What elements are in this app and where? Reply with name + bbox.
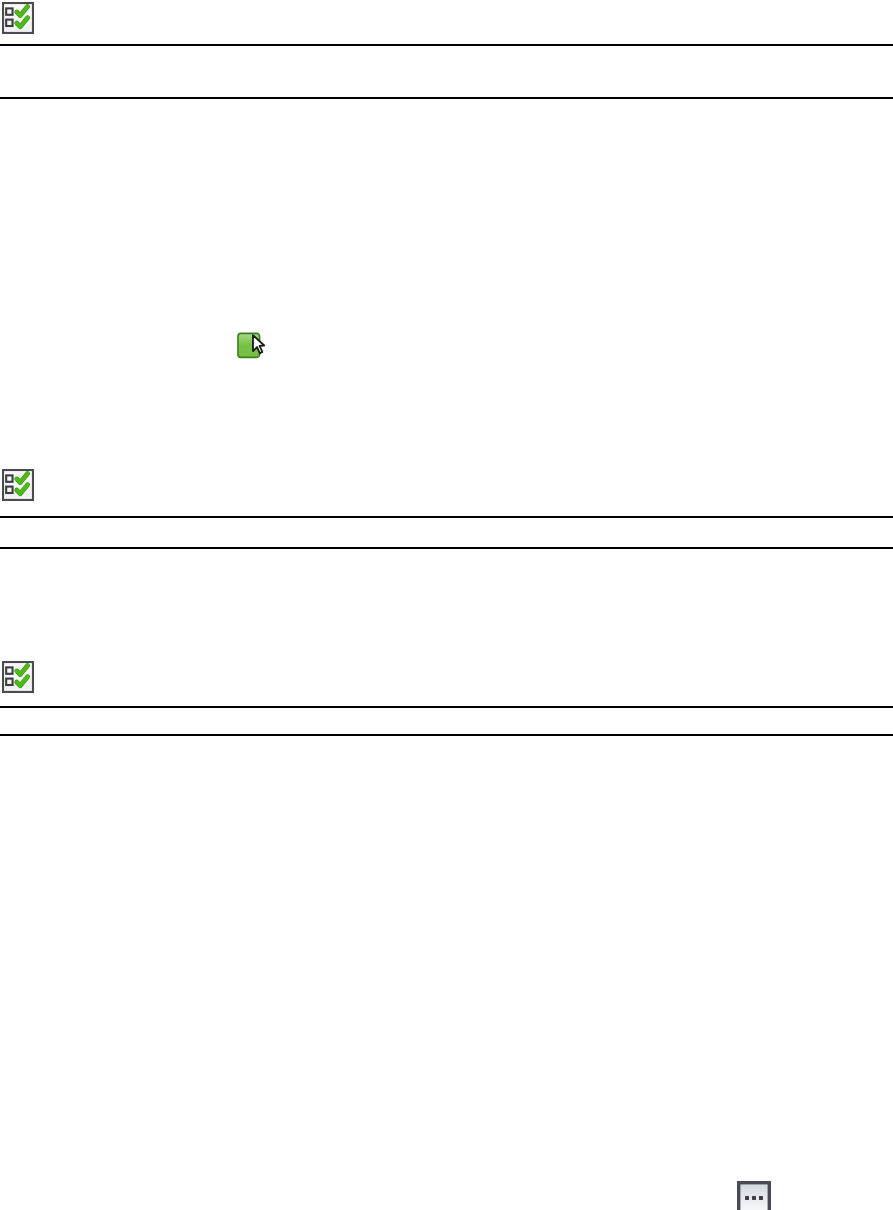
button[interactable]: More options [737, 1181, 771, 1210]
button[interactable]: Checklist [2, 469, 34, 501]
button[interactable]: Checklist [2, 2, 34, 34]
button[interactable]: Select object [238, 331, 268, 361]
button[interactable]: Checklist [2, 661, 34, 693]
